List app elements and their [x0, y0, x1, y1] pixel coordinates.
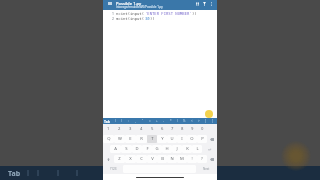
staticText: <: [191, 119, 193, 123]
button[interactable]: =: [146, 118, 153, 124]
staticText: =: [149, 119, 151, 123]
button[interactable]: Delete: [207, 154, 217, 164]
button[interactable]: *: [167, 118, 174, 124]
button[interactable]: S: [121, 145, 132, 153]
button[interactable]: -: [160, 118, 167, 124]
staticText: :: [128, 119, 129, 123]
staticText: N: [170, 156, 174, 162]
button[interactable]: Run code: [205, 110, 213, 118]
button[interactable]: Shift: [103, 154, 114, 164]
staticText: 2: [118, 126, 121, 132]
staticText: *: [170, 119, 172, 123]
staticText: O: [190, 136, 194, 142]
staticText: 1: [112, 11, 114, 16]
staticText: 9: [191, 126, 194, 132]
staticText: W: [118, 136, 122, 142]
staticText: [: [205, 119, 206, 123]
button[interactable]: ]: [209, 118, 216, 124]
button[interactable]: >: [195, 118, 202, 124]
button[interactable]: V: [147, 155, 157, 163]
staticText: 6: [161, 126, 164, 132]
staticText: %: [183, 119, 186, 123]
staticText: V: [151, 156, 154, 162]
button[interactable]: [: [202, 118, 209, 124]
button[interactable]: A: [110, 145, 121, 153]
staticText: 2: [112, 16, 114, 21]
button[interactable]: Symbols: [103, 164, 123, 174]
button[interactable]: D: [132, 145, 142, 153]
button[interactable]: +: [153, 118, 160, 124]
button[interactable]: ,: [132, 118, 139, 124]
button[interactable]: 8: [177, 124, 187, 134]
button[interactable]: C: [136, 155, 147, 163]
button[interactable]: %: [181, 118, 188, 124]
button[interactable]: Z: [114, 155, 125, 163]
button[interactable]: W: [114, 135, 125, 143]
button[interactable]: N: [167, 155, 177, 163]
staticText: +: [156, 119, 158, 123]
button[interactable]: !: [187, 155, 197, 163]
staticText: ,: [135, 119, 136, 123]
button[interactable]: 5: [147, 124, 157, 134]
staticText: 8: [181, 126, 184, 132]
button[interactable]: K: [182, 145, 192, 153]
button[interactable]: B: [157, 155, 167, 163]
staticText: ]: [212, 119, 213, 123]
button[interactable]: P: [197, 135, 207, 143]
button[interactable]: /: [174, 118, 181, 124]
staticText: ): [121, 119, 122, 123]
staticText: n=int(input(: [116, 11, 145, 16]
button[interactable]: 7: [167, 124, 177, 134]
button[interactable]: Run: [200, 0, 208, 10]
button[interactable]: 3: [125, 124, 136, 134]
button[interactable]: I: [177, 135, 187, 143]
button[interactable]: :: [125, 118, 132, 124]
button[interactable]: H: [162, 145, 172, 153]
staticText: /: [177, 119, 179, 123]
button[interactable]: L: [192, 145, 202, 153]
button[interactable]: R: [136, 135, 147, 143]
button[interactable]: 6: [157, 124, 167, 134]
button[interactable]: 9: [187, 124, 197, 134]
staticText: R: [140, 136, 143, 142]
button[interactable]: More options: [207, 0, 215, 10]
button[interactable]: O: [187, 135, 197, 143]
button[interactable]: Navigation menu: [106, 0, 116, 10]
button[interactable]: M: [177, 155, 187, 163]
button[interactable]: 4: [136, 124, 147, 134]
button[interactable]: ): [118, 118, 125, 124]
staticText: 'ENTER FIRST NUMBER': [145, 11, 192, 16]
button[interactable]: Y: [157, 135, 167, 143]
button[interactable]: 2: [114, 124, 125, 134]
button[interactable]: X: [125, 155, 136, 163]
button[interactable]: Q: [103, 135, 114, 143]
button[interactable]: 1: [103, 124, 114, 134]
staticText: 7: [171, 126, 174, 132]
button[interactable]: <: [188, 118, 195, 124]
button[interactable]: Backspace: [207, 134, 217, 144]
button[interactable]: 0: [197, 124, 207, 134]
staticText: 3: [129, 126, 132, 132]
staticText: ?123: [110, 167, 117, 171]
button[interactable]: ": [139, 118, 146, 124]
button[interactable]: Save: [193, 0, 201, 10]
staticText: Tab: [104, 119, 110, 124]
button[interactable]: F: [142, 145, 152, 153]
button[interactable]: (: [112, 118, 118, 124]
button[interactable]: U: [167, 135, 177, 143]
staticText: U: [170, 136, 174, 142]
staticText: )): [150, 16, 155, 21]
button[interactable]: J: [172, 145, 182, 153]
button[interactable]: Next: [196, 164, 217, 174]
button[interactable]: ?: [197, 155, 207, 163]
button[interactable]: T: [147, 135, 157, 143]
staticText: -: [163, 119, 164, 123]
staticText: Next: [203, 167, 210, 171]
button[interactable]: Enter: [202, 144, 217, 154]
staticText: M: [180, 156, 184, 162]
staticText: ": [142, 119, 144, 123]
staticText: Y: [161, 136, 164, 142]
button[interactable]: E: [125, 135, 136, 143]
button[interactable]: G: [152, 145, 162, 153]
